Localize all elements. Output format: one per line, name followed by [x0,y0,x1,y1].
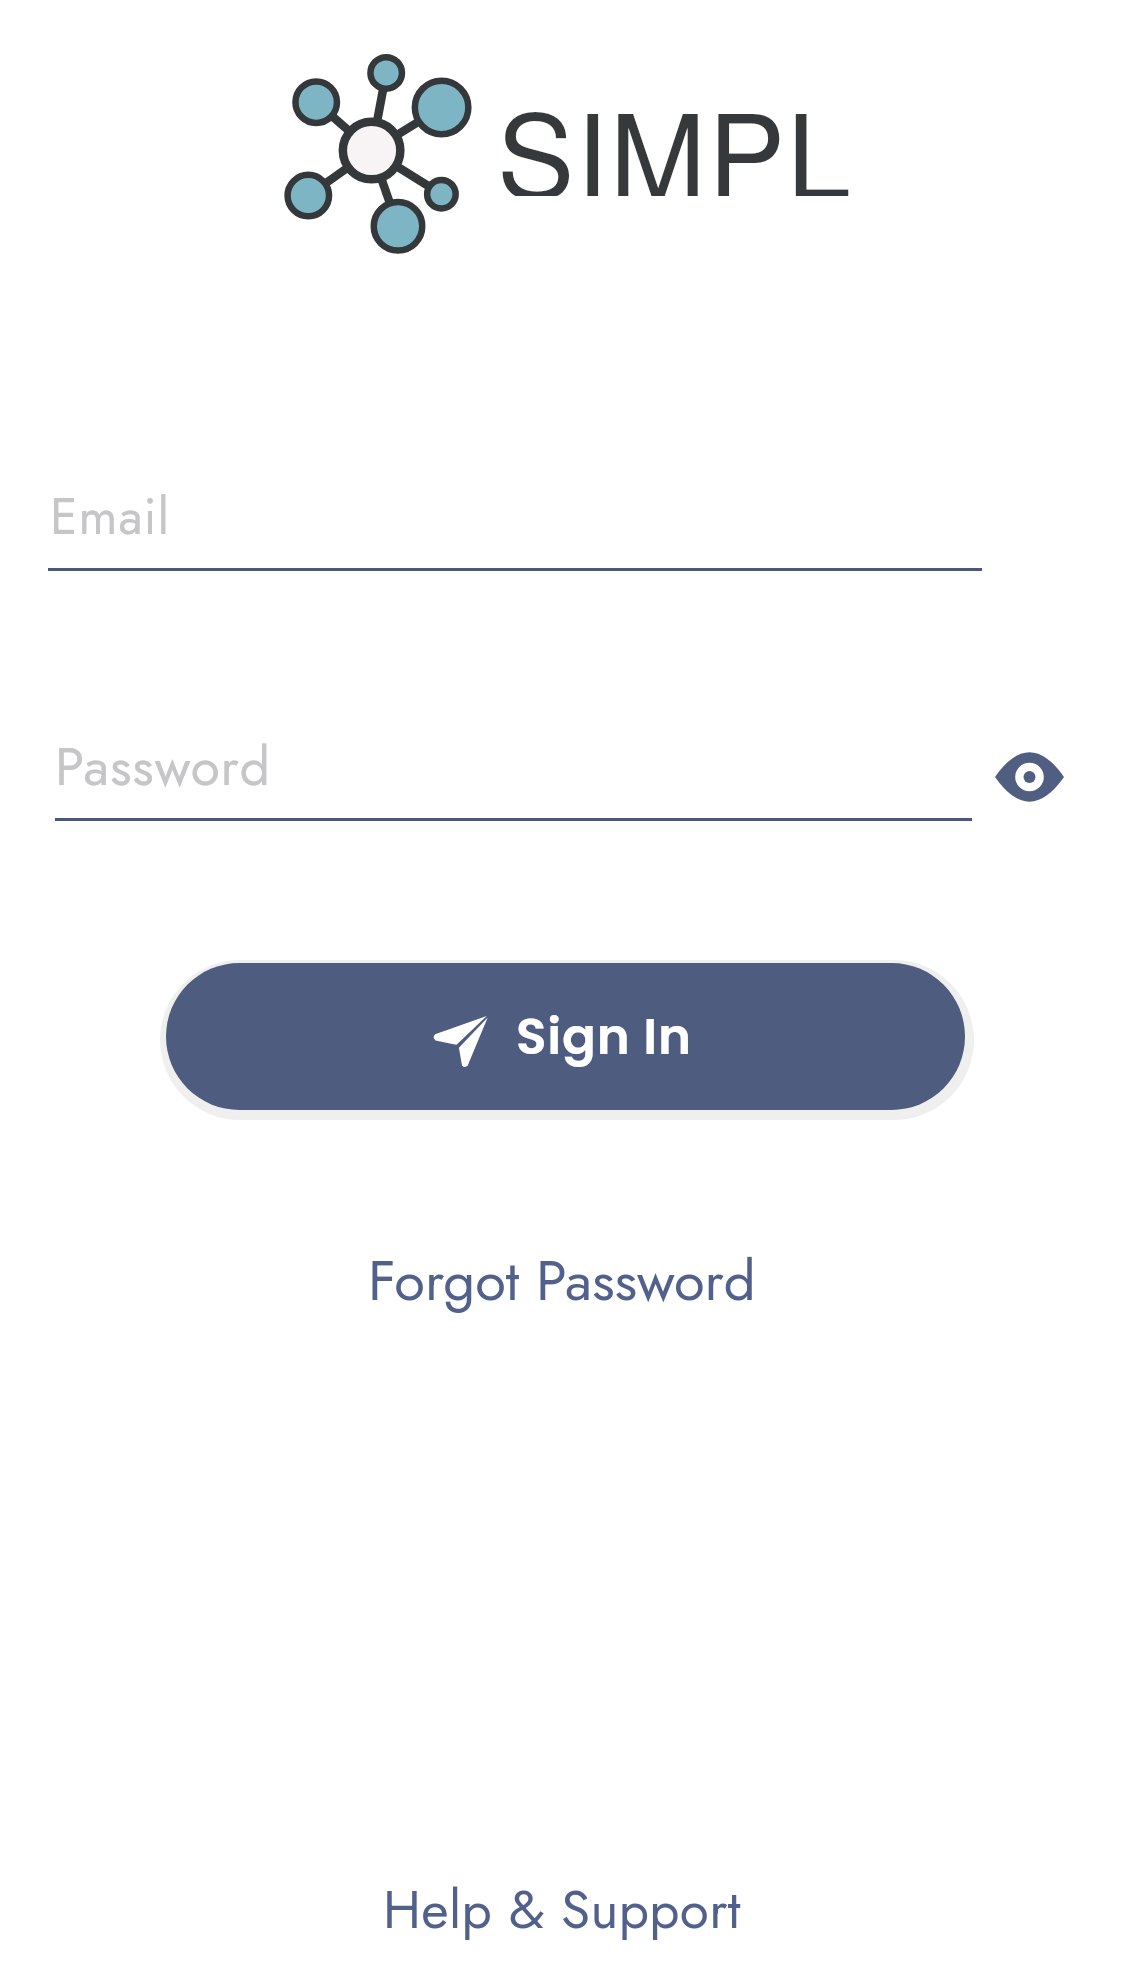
staticText: Password [55,728,271,805]
staticText: Email [50,480,171,552]
button[interactable]: Help & Support [383,1871,741,1948]
button[interactable]: Password [55,710,972,824]
button[interactable]: Sign In [166,963,965,1110]
staticText: SIMPL [497,66,853,196]
button[interactable]: Forgot Password [368,1240,756,1321]
button[interactable] [995,755,1064,799]
staticText: Sign In [516,1002,692,1072]
staticText: Forgot Password [368,1240,756,1321]
button[interactable]: Email [48,460,982,574]
staticText: Help & Support [383,1871,741,1948]
